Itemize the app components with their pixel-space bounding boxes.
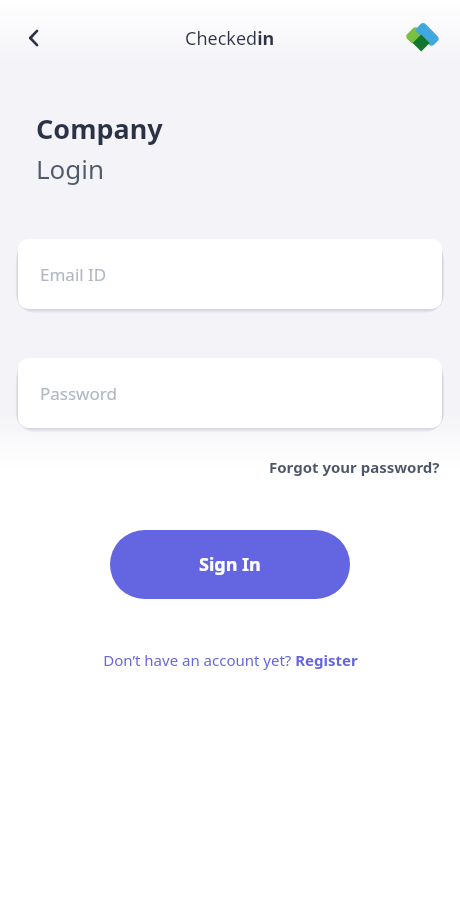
staticText: Sign In bbox=[199, 552, 261, 577]
staticText: Forgot your password? bbox=[269, 457, 440, 477]
button[interactable]: Sign In bbox=[110, 530, 350, 599]
staticText: Email ID bbox=[40, 263, 107, 286]
button[interactable]: Checkedin logo bbox=[400, 15, 446, 61]
button[interactable]: Forgot your password? bbox=[267, 453, 442, 481]
staticText: Company bbox=[36, 110, 163, 147]
staticText: Password bbox=[40, 382, 117, 405]
staticText: Don’t have an account yet? Register bbox=[103, 650, 358, 670]
staticText: Login bbox=[36, 151, 105, 186]
button[interactable]: Email ID bbox=[18, 239, 442, 309]
button[interactable]: Password bbox=[18, 358, 442, 428]
button[interactable]: Don’t have an account yet? Register bbox=[99, 646, 362, 674]
staticText: Checkedin bbox=[185, 26, 275, 51]
button[interactable]: Back bbox=[12, 16, 56, 60]
